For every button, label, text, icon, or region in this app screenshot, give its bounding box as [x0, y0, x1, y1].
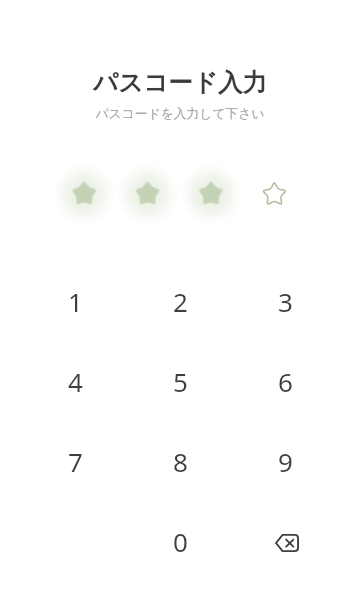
button[interactable]: 3 — [233, 261, 338, 341]
staticText: 6 — [278, 364, 293, 399]
staticText: 3 — [278, 284, 293, 319]
button[interactable]: 7 — [22, 421, 128, 501]
staticText: 9 — [278, 444, 293, 479]
button[interactable]: Delete — [233, 501, 338, 581]
staticText: 8 — [173, 444, 188, 479]
staticText: 7 — [68, 444, 83, 479]
staticText: 0 — [173, 524, 188, 559]
staticText: パスコード入力 — [0, 67, 360, 98]
staticText: 2 — [173, 284, 188, 319]
button[interactable]: 9 — [233, 421, 338, 501]
button[interactable]: 0 — [128, 501, 233, 581]
button[interactable]: 8 — [128, 421, 233, 501]
button[interactable]: 4 — [22, 341, 128, 421]
button[interactable]: 6 — [233, 341, 338, 421]
staticText: 4 — [68, 364, 83, 399]
button[interactable]: 2 — [128, 261, 233, 341]
button[interactable]: 1 — [22, 261, 128, 341]
staticText: 1 — [68, 284, 83, 319]
staticText: 5 — [173, 364, 188, 399]
staticText: パスコードを入力して下さい — [0, 106, 360, 122]
button[interactable]: 5 — [128, 341, 233, 421]
